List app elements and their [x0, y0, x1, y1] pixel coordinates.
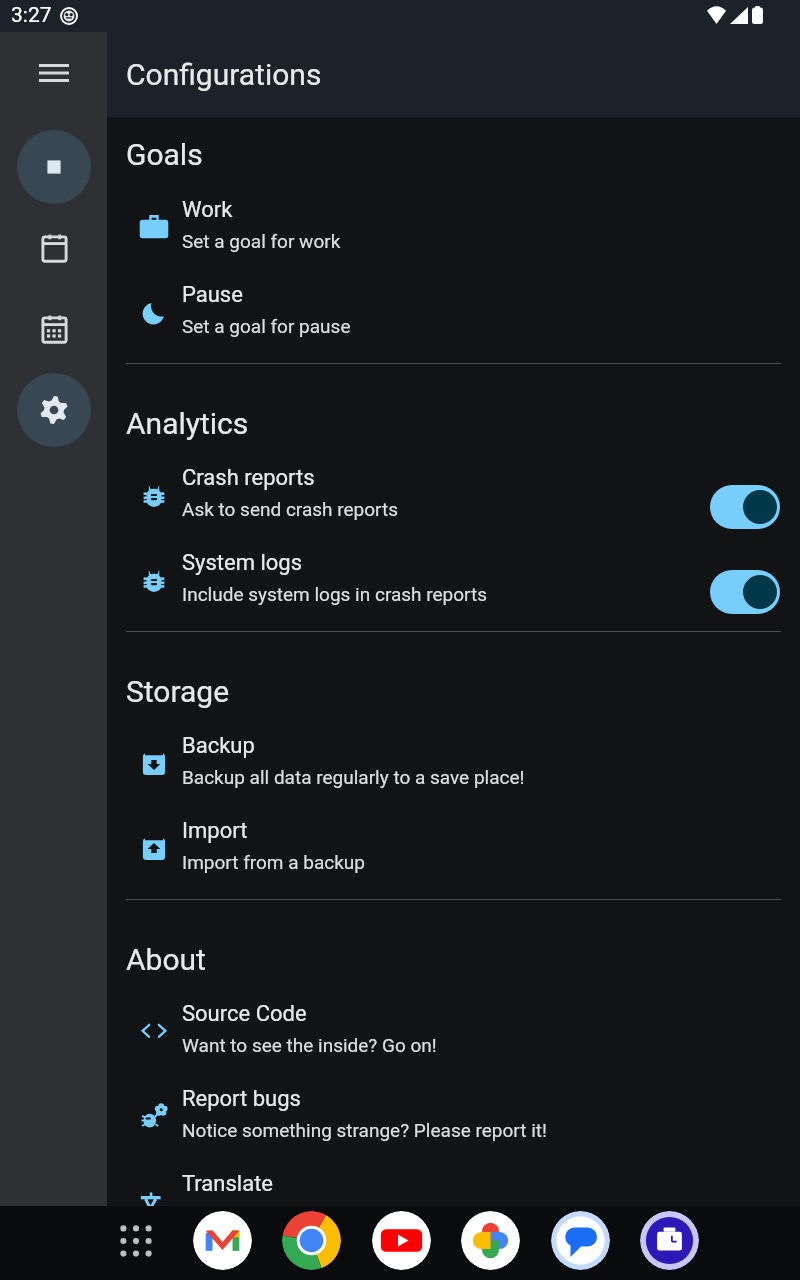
staticText: Work	[182, 197, 233, 223]
staticText: Import from a backup	[182, 851, 366, 873]
staticText: Set a goal for pause	[182, 315, 351, 337]
button[interactable]: Backup	[107, 703, 800, 787]
button[interactable]: Menu	[28, 47, 80, 99]
staticText: Include system logs in crash reports	[182, 583, 488, 605]
staticText: Backup all data regularly to a save plac…	[182, 766, 525, 788]
button[interactable]: Today	[17, 211, 91, 285]
button[interactable]: Toggle	[710, 570, 780, 614]
staticText: Report bugs	[182, 1086, 301, 1112]
staticText: Ask to send crash reports	[182, 498, 399, 520]
button[interactable]: Crash reports	[107, 435, 800, 519]
button[interactable]: Work	[107, 167, 800, 251]
button[interactable]: Calendar	[17, 292, 91, 366]
staticText: System logs	[182, 550, 303, 576]
staticText: Crash reports	[182, 465, 315, 491]
staticText: Translate	[182, 1171, 273, 1197]
button[interactable]: Timer	[17, 130, 91, 204]
button[interactable]: YouTube	[372, 1211, 431, 1270]
button[interactable]: Photos	[461, 1211, 520, 1270]
button[interactable]: Translate	[107, 1141, 800, 1225]
button[interactable]: Toggle	[710, 485, 780, 529]
button[interactable]: Gmail	[193, 1211, 252, 1270]
staticText: 3:27	[11, 3, 52, 28]
staticText: Set a goal for work	[182, 230, 341, 252]
staticText: Storage	[126, 674, 230, 709]
button[interactable]: System logs	[107, 520, 800, 604]
button[interactable]: Chrome	[282, 1211, 341, 1270]
staticText: Import	[182, 818, 248, 844]
staticText: About	[126, 942, 206, 977]
button[interactable]: Source Code	[107, 971, 800, 1055]
staticText: Goals	[126, 137, 203, 172]
staticText: Notice something strange? Please report …	[182, 1119, 547, 1141]
button[interactable]: All apps	[110, 1215, 162, 1267]
staticText: Help to translate the app	[182, 1204, 390, 1226]
staticText: Pause	[182, 282, 243, 308]
staticText: Analytics	[126, 406, 249, 441]
button[interactable]: Import	[107, 788, 800, 872]
button[interactable]: Pause	[107, 252, 800, 336]
button[interactable]: Settings	[17, 373, 91, 447]
staticText: Backup	[182, 733, 255, 759]
button[interactable]: Messages	[551, 1211, 610, 1270]
button[interactable]: Report bugs	[107, 1056, 800, 1140]
staticText: Source Code	[182, 1001, 307, 1027]
button[interactable]: Work clock	[640, 1211, 699, 1270]
staticText: Want to see the inside? Go on!	[182, 1034, 437, 1056]
staticText: Configurations	[126, 57, 322, 92]
